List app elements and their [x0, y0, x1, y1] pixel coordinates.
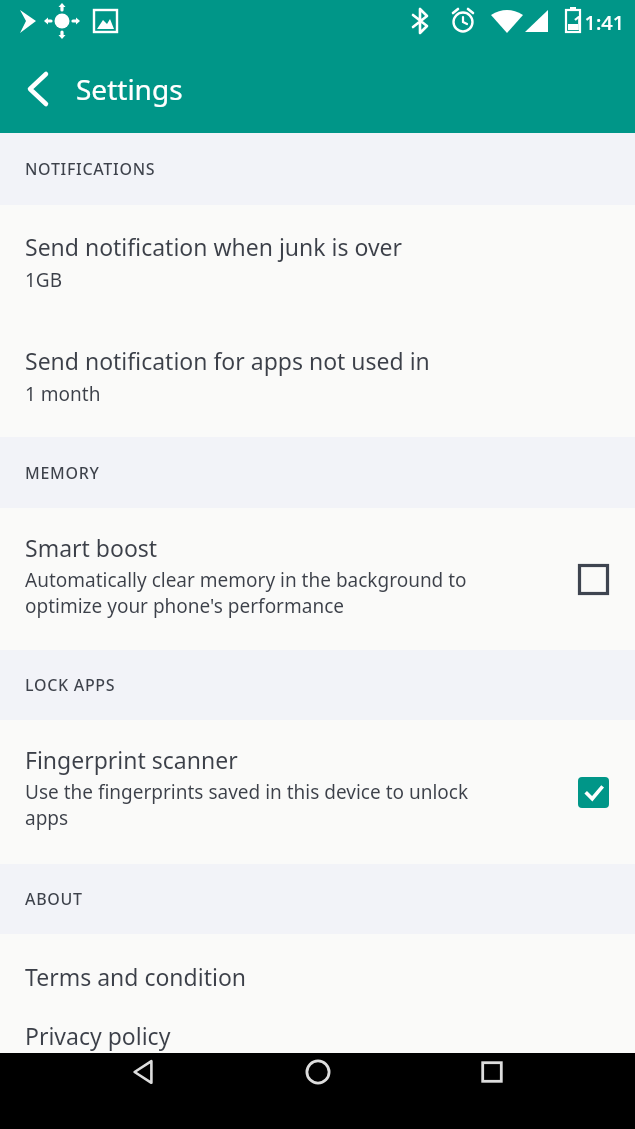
staticText: 1 month [25, 381, 101, 407]
staticText: ABOUT [25, 888, 83, 910]
button[interactable]: Disabled [573, 559, 613, 599]
staticText: Settings [76, 70, 183, 108]
button[interactable]: Fingerprint scanner [0, 720, 635, 864]
staticText: 1GB [25, 267, 63, 293]
staticText: Use the fingerprints saved in this devic… [25, 779, 469, 805]
staticText: Fingerprint scanner [25, 744, 238, 775]
button[interactable]: Smart boost [0, 508, 635, 650]
staticText: LOCK APPS [25, 674, 116, 696]
staticText: Smart boost [25, 532, 158, 563]
button[interactable]: Send notification when junk is over [0, 205, 635, 320]
staticText: Terms and condition [25, 961, 247, 992]
button[interactable]: Send notification for apps not used in [0, 320, 635, 437]
button[interactable]: Recents [460, 1057, 524, 1121]
button[interactable]: Back [111, 1057, 175, 1121]
staticText: Send notification for apps not used in [25, 345, 430, 376]
staticText: 11:41 [573, 9, 625, 36]
staticText: apps [25, 805, 69, 831]
button[interactable]: Privacy policy [0, 1018, 635, 1053]
staticText: Privacy policy [25, 1020, 171, 1051]
button[interactable]: Back [12, 63, 64, 115]
staticText: Send notification when junk is over [25, 231, 403, 262]
button[interactable]: Home [286, 1057, 350, 1121]
button[interactable]: Enabled [573, 772, 613, 812]
staticText: NOTIFICATIONS [25, 158, 156, 180]
staticText: Automatically clear memory in the backgr… [25, 567, 467, 593]
button[interactable]: Terms and condition [0, 934, 635, 1018]
staticText: optimize your phone's performance [25, 593, 344, 619]
staticText: MEMORY [25, 462, 100, 484]
